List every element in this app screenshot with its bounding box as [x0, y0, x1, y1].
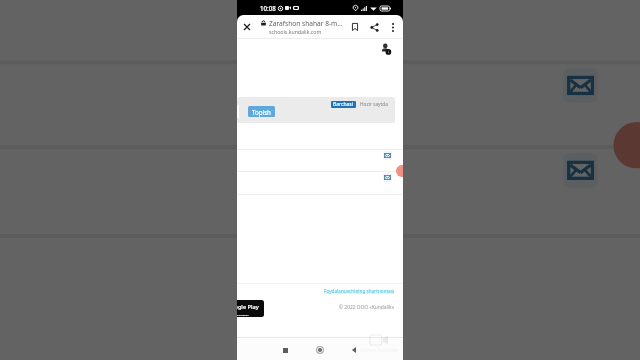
button[interactable]: Barchasi	[331, 101, 356, 108]
button[interactable]: Foydalanuvchining shartnomasi	[324, 288, 395, 294]
button[interactable]: More options	[386, 15, 400, 39]
button[interactable]: Google Play	[237, 300, 264, 317]
button[interactable]: Share	[366, 15, 383, 39]
staticText: Zarafshon shahar 8-m…	[269, 19, 343, 28]
button[interactable]: Account	[379, 42, 392, 55]
button[interactable]: Bookmark	[346, 15, 363, 39]
button[interactable]: New message	[613, 122, 640, 168]
staticText: Hozir saytda	[360, 101, 388, 108]
button[interactable]: Send message	[383, 173, 392, 182]
button[interactable]: Send message	[563, 153, 598, 188]
staticText: © 2022 ООО «Kundalik»	[339, 304, 395, 311]
staticText: schools.kundalik.com	[269, 28, 322, 35]
button[interactable]: Home	[311, 341, 329, 359]
staticText: Google Play	[237, 303, 259, 311]
button[interactable]: Back	[345, 341, 363, 359]
button[interactable]: Close	[239, 15, 255, 39]
button[interactable]: Send message	[563, 68, 598, 103]
button[interactable]: Recent apps	[276, 341, 294, 359]
button[interactable]: Hozir saytda	[360, 101, 388, 108]
staticText: 10:08	[260, 4, 276, 12]
button[interactable]: Topish	[248, 106, 275, 117]
staticText: Topish	[252, 108, 271, 116]
staticText: да возможно	[237, 313, 249, 316]
button[interactable]: New message	[396, 165, 403, 177]
staticText: Barchasi	[333, 101, 354, 108]
button[interactable]: Send message	[383, 151, 392, 160]
